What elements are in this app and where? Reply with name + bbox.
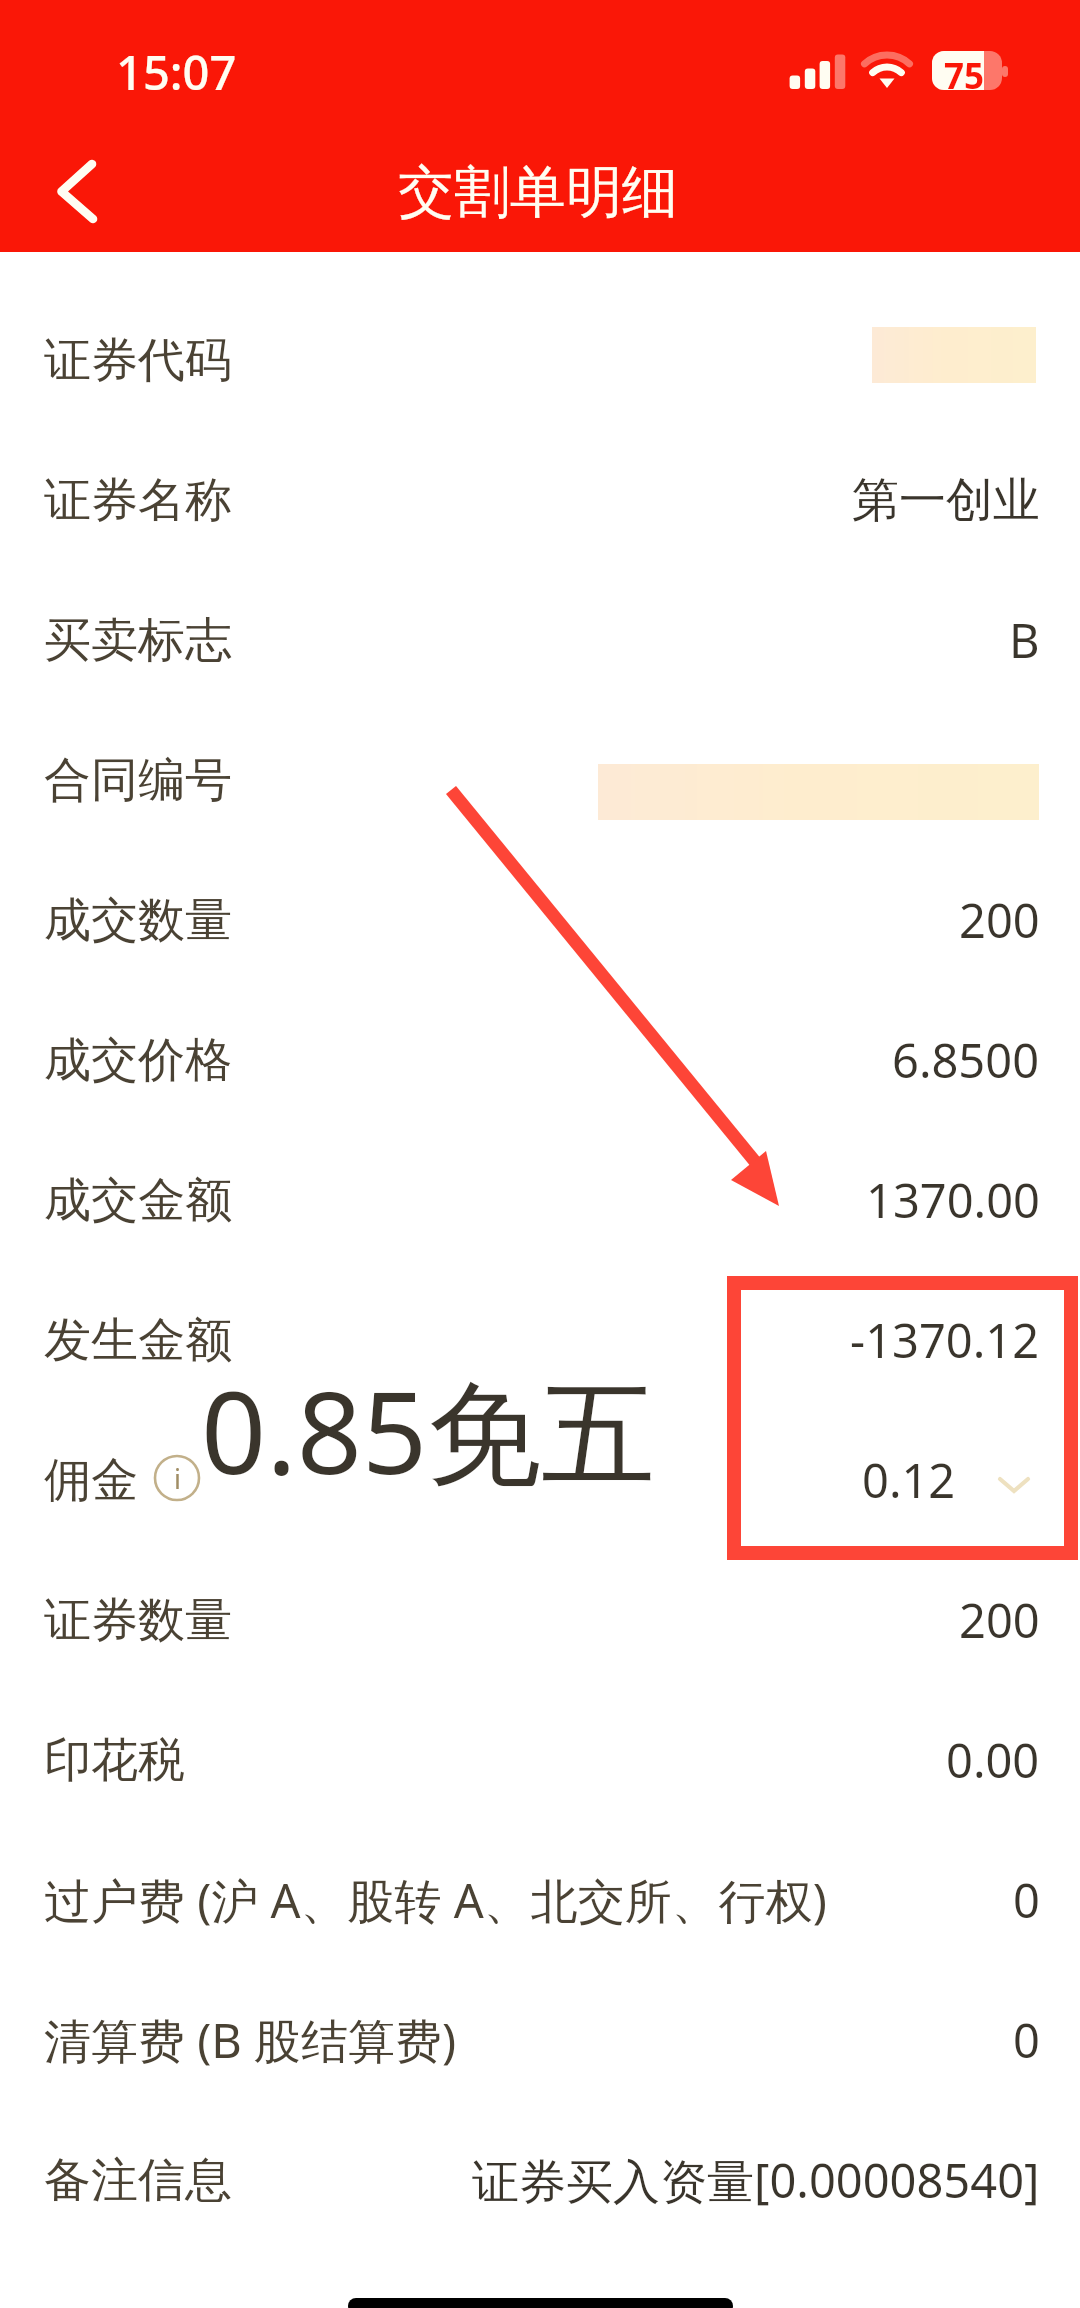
staticText: 买卖标志 (44, 611, 232, 670)
staticText: 6.8500 (892, 1028, 1040, 1092)
staticText: 0 (1013, 1868, 1040, 1932)
button[interactable]: 过户费 (沪 A、股转 A、北交所、行权) (0, 1830, 1080, 1970)
button[interactable]: 买卖标志 (0, 570, 1080, 710)
staticText: 200 (959, 888, 1040, 952)
staticText: 证券买入资量[0.00008540] (472, 2148, 1040, 2212)
button[interactable]: 发生金额 (0, 1270, 1080, 1410)
staticText: 佣金 (44, 1451, 138, 1510)
staticText: 1370.00 (866, 1168, 1040, 1232)
staticText: 证券名称 (44, 471, 232, 530)
button[interactable]: Back (40, 148, 130, 238)
button[interactable]: 印花税 (0, 1690, 1080, 1830)
button[interactable]: 成交数量 (0, 850, 1080, 990)
button[interactable]: 证券代码 (0, 290, 1080, 430)
button[interactable]: 备注信息 (0, 2110, 1080, 2250)
staticText: 200 (959, 1588, 1040, 1652)
staticText: i (174, 1460, 181, 1497)
staticText: 交割单明细 (398, 157, 678, 228)
button[interactable]: 合同编号 (0, 710, 1080, 850)
staticText: 0.12 (862, 1448, 956, 1512)
button[interactable]: 清算费 (B 股结算费) (0, 1970, 1080, 2110)
staticText: 印花税 (44, 1731, 185, 1790)
button[interactable]: 证券数量 (0, 1550, 1080, 1690)
staticText: 成交数量 (44, 891, 232, 950)
button[interactable]: 成交价格 (0, 990, 1080, 1130)
staticText: 过户费 (沪 A、股转 A、北交所、行权) (44, 1868, 827, 1932)
staticText: 证券代码 (44, 331, 232, 390)
staticText: 15:07 (116, 40, 237, 104)
staticText: B (1009, 608, 1040, 672)
staticText: 清算费 (B 股结算费) (44, 2008, 457, 2072)
staticText: 证券数量 (44, 1591, 232, 1650)
staticText: 合同编号 (44, 751, 232, 810)
staticText: 0 (1013, 2008, 1040, 2072)
staticText: 备注信息 (44, 2151, 232, 2210)
staticText: 发生金额 (44, 1311, 232, 1370)
staticText: 成交金额 (44, 1171, 232, 1230)
staticText: 0.00 (946, 1728, 1040, 1792)
staticText: 0.85免五 (201, 1352, 656, 1508)
staticText: 75 (944, 52, 985, 100)
button[interactable]: 证券名称 (0, 430, 1080, 570)
button[interactable]: 成交金额 (0, 1130, 1080, 1270)
staticText: 第一创业 (852, 471, 1040, 530)
staticText: -1370.12 (850, 1308, 1040, 1372)
button[interactable]: 佣金说明 (154, 1455, 200, 1501)
button[interactable]: 佣金 (0, 1410, 1080, 1550)
staticText: 成交价格 (44, 1031, 232, 1090)
